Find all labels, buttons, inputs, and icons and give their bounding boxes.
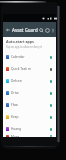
- button[interactable]: Help: [44, 27, 50, 33]
- button[interactable]: Defcon: [3, 75, 56, 87]
- staticText: Maps: [11, 135, 20, 137]
- staticText: Flow: [11, 103, 18, 107]
- button[interactable]: Back: [5, 27, 11, 33]
- button[interactable]: Huang: [3, 123, 56, 135]
- staticText: Quick Task m: [11, 67, 31, 71]
- button[interactable]: Quick Task m: [3, 63, 56, 75]
- button[interactable]: Flow: [3, 99, 56, 111]
- staticText: Tap an app to allow or deny it: [6, 45, 42, 49]
- button[interactable]: More options: [50, 28, 55, 33]
- button[interactable]: Drive: [3, 87, 56, 99]
- button[interactable]: Search: [38, 27, 44, 33]
- staticText: Calendar: [11, 55, 25, 59]
- staticText: Avast Guard: [12, 27, 38, 33]
- staticText: Drive: [11, 91, 19, 95]
- staticText: Huang: [11, 127, 22, 131]
- button[interactable]: Keep: [3, 111, 56, 123]
- button[interactable]: Calendar: [3, 51, 56, 63]
- staticText: Auto-start apps: [6, 39, 34, 44]
- staticText: Defcon: [11, 79, 22, 83]
- button[interactable]: Maps: [3, 135, 56, 137]
- staticText: Keep: [11, 115, 19, 119]
